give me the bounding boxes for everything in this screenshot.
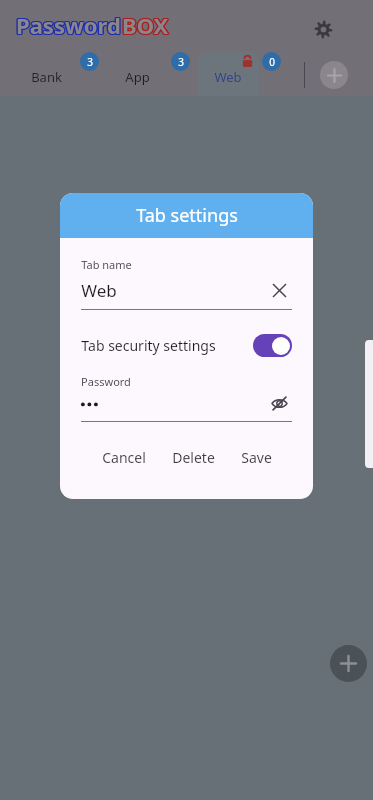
button[interactable]: Web — [191, 52, 265, 96]
button[interactable]: Delete — [166, 444, 221, 471]
staticText: 3 — [178, 55, 184, 69]
staticText: 3 — [87, 55, 93, 69]
button[interactable]: Add tab — [320, 61, 348, 89]
staticText: Tab name — [81, 257, 132, 272]
button[interactable]: Cancel — [96, 444, 152, 471]
button[interactable]: Tab security settings — [81, 334, 292, 357]
button[interactable]: App — [100, 52, 174, 96]
button[interactable]: Save — [235, 444, 278, 471]
staticText: Delete — [172, 448, 215, 467]
button[interactable]: Tab security toggle — [253, 334, 292, 357]
staticText: Save — [241, 448, 272, 467]
button[interactable]: Clear — [266, 277, 292, 303]
button[interactable]: Show password — [266, 390, 292, 416]
button[interactable]: Settings — [306, 12, 340, 46]
staticText: Password — [81, 374, 131, 389]
button[interactable]: Add — [330, 645, 367, 682]
staticText: Web — [81, 279, 117, 302]
staticText: Cancel — [102, 448, 146, 467]
staticText: App — [125, 68, 150, 86]
button[interactable]: Bank — [9, 52, 83, 96]
staticText: 0 — [269, 55, 275, 69]
staticText: Tab security settings — [81, 336, 216, 355]
staticText: Tab settings — [136, 203, 238, 228]
staticText: Web — [214, 68, 242, 86]
staticText: Bank — [31, 68, 62, 86]
